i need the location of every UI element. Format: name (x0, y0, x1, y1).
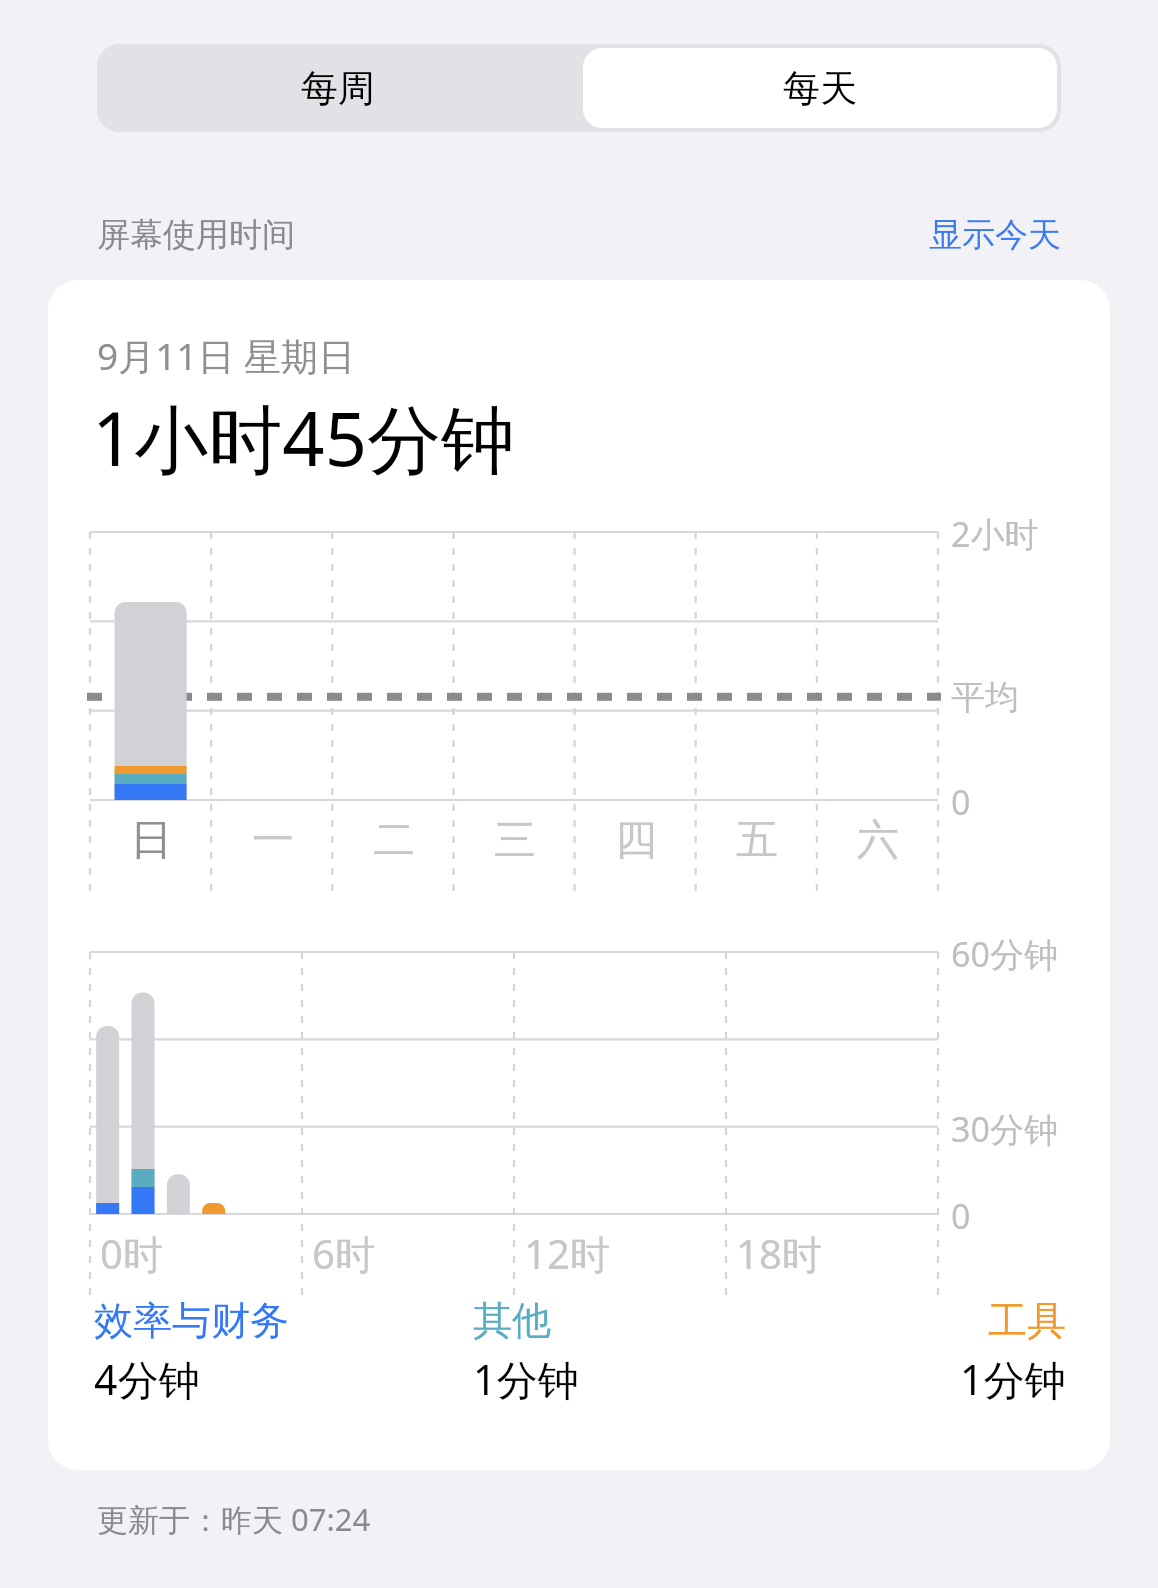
staticText: 三 (494, 814, 536, 867)
staticText: 0 (951, 1193, 971, 1239)
staticText: 一 (252, 814, 294, 867)
staticText: 平均 (951, 676, 1019, 719)
staticText: 60分钟 (951, 931, 1058, 977)
staticText: 1分钟 (960, 1351, 1066, 1407)
staticText: 2小时 (951, 511, 1039, 557)
staticText: 五 (736, 814, 778, 867)
staticText: 每周 (301, 65, 375, 112)
button[interactable]: 每周 (97, 44, 579, 132)
staticText: 每天 (783, 65, 857, 112)
button[interactable]: 显示今天 (929, 214, 1061, 256)
staticText: 四 (615, 814, 657, 867)
staticText: 0时 (100, 1226, 163, 1281)
staticText: 其他 (473, 1296, 551, 1345)
staticText: 12时 (524, 1226, 610, 1281)
staticText: 二 (373, 814, 415, 867)
staticText: 效率与财务 (94, 1296, 289, 1345)
staticText: 30分钟 (951, 1106, 1058, 1152)
staticText: 0 (951, 779, 971, 825)
staticText: 18时 (736, 1226, 822, 1281)
staticText: 显示今天 (929, 214, 1061, 256)
button[interactable]: 9月11日 星期日 (48, 280, 1110, 1470)
button[interactable]: 每天 (583, 48, 1057, 128)
staticText: 工具 (988, 1296, 1066, 1345)
button[interactable]: 其他 (473, 1296, 802, 1407)
staticText: 9月11日 星期日 (97, 330, 356, 381)
staticText: 1小时45分钟 (92, 387, 515, 488)
staticText: 屏幕使用时间 (97, 214, 295, 256)
button[interactable]: 工具 (802, 1296, 1066, 1407)
staticText: 更新于：昨天 07:24 (97, 1498, 371, 1540)
staticText: 日 (130, 814, 172, 867)
staticText: 4分钟 (94, 1351, 200, 1407)
staticText: 6时 (312, 1226, 375, 1281)
staticText: 六 (857, 814, 899, 867)
button[interactable]: 效率与财务 (94, 1296, 473, 1407)
staticText: 1分钟 (473, 1351, 579, 1407)
